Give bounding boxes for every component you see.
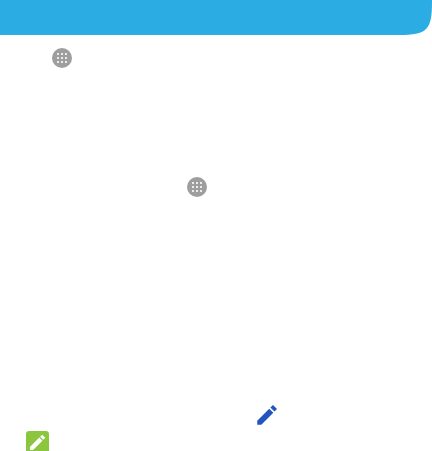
button[interactable]: Apps xyxy=(187,177,207,197)
button[interactable]: Apps xyxy=(52,48,72,68)
button[interactable]: Edit xyxy=(254,402,280,428)
button[interactable]: Compose xyxy=(26,431,49,451)
